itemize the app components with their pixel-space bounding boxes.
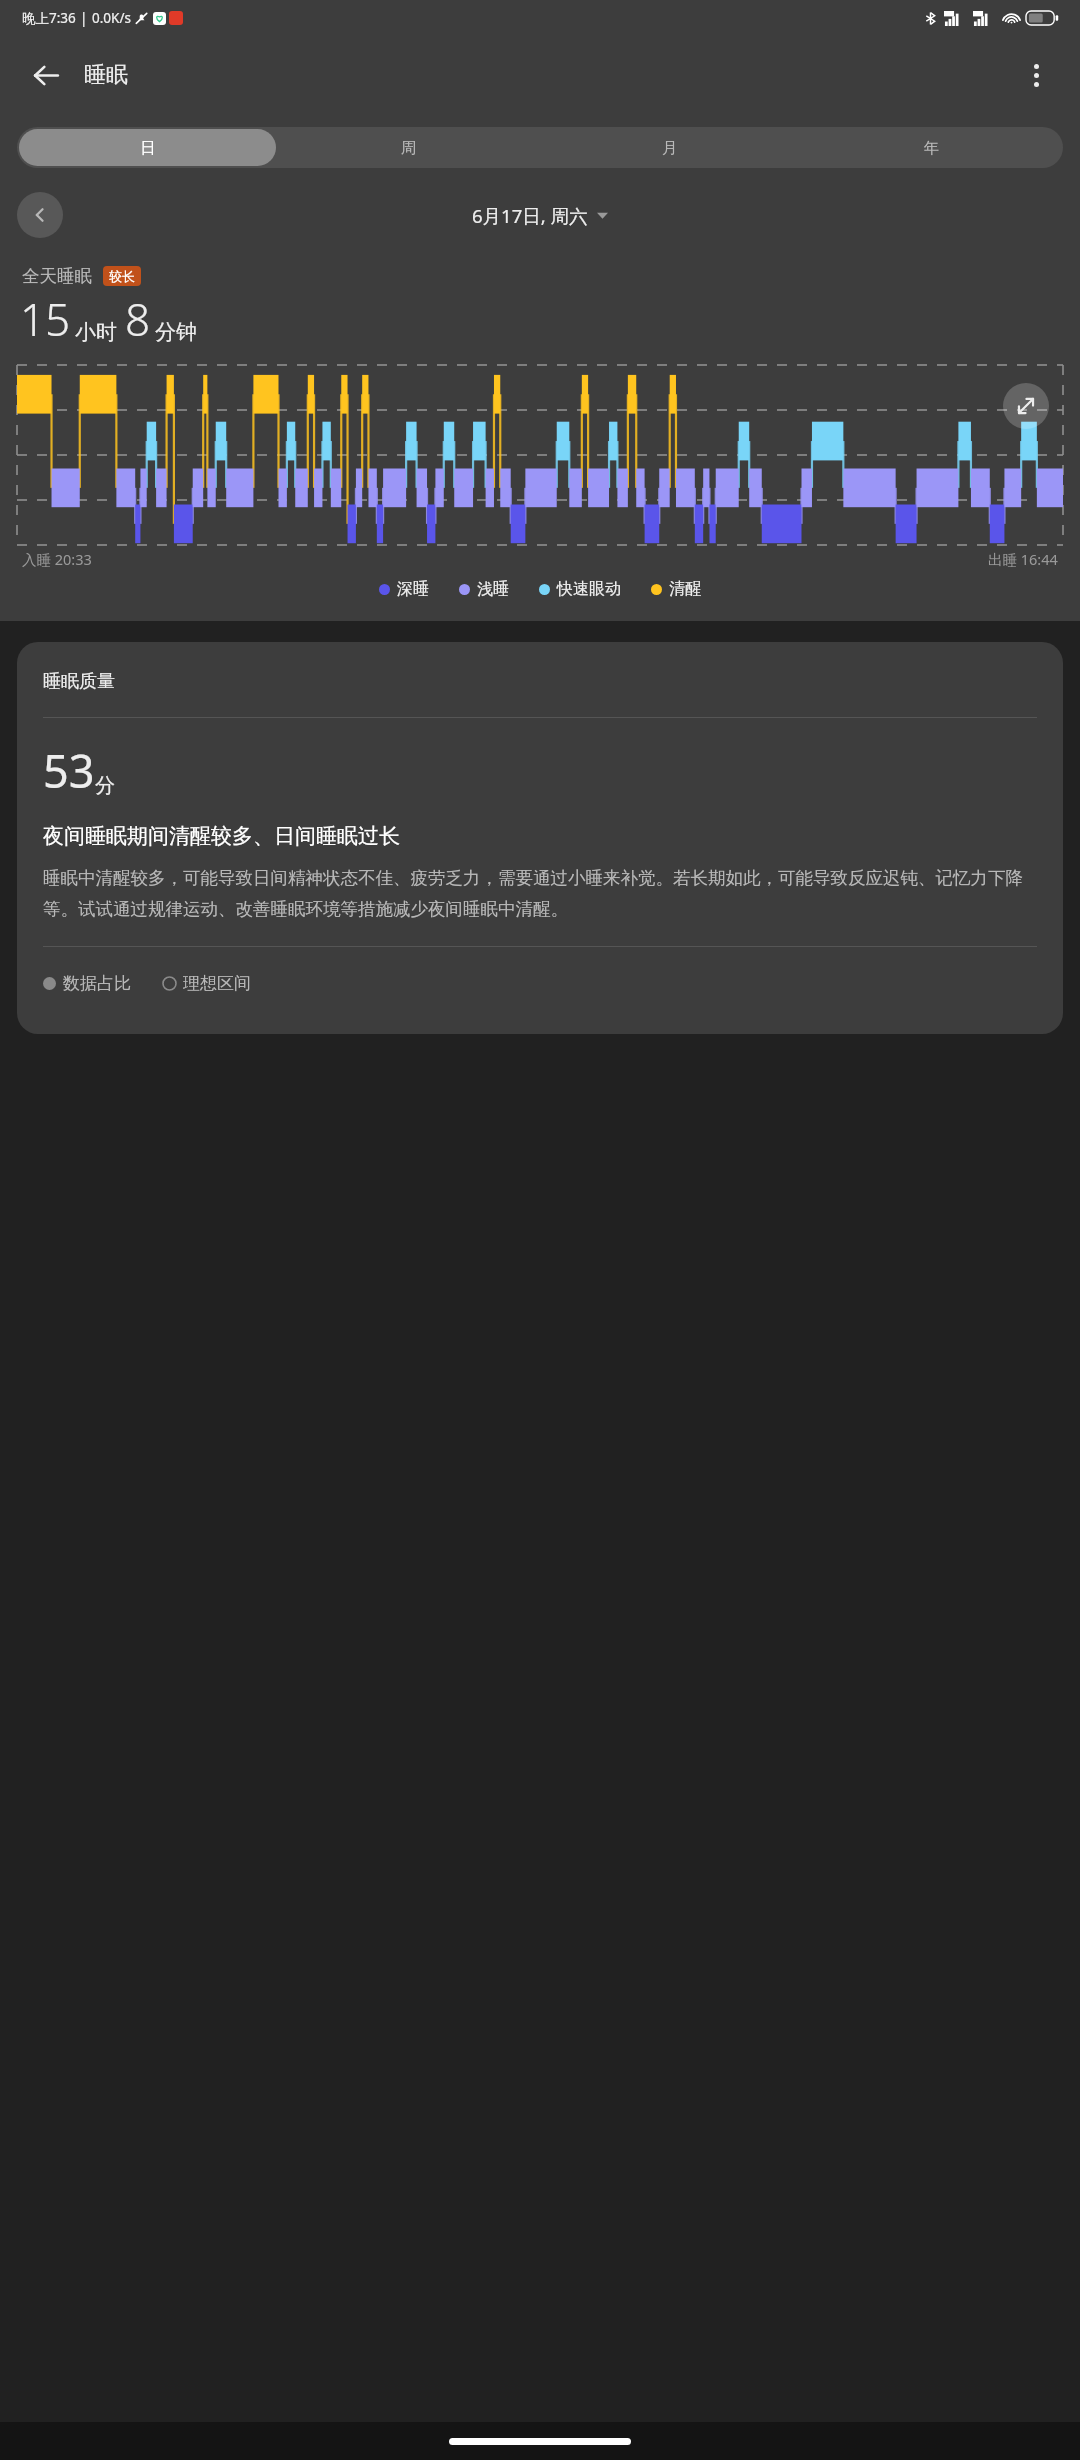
- staticText: 全天睡眠: [22, 265, 92, 287]
- button[interactable]: More options: [1012, 51, 1060, 99]
- staticText: 8: [125, 289, 151, 349]
- staticText: 周: [401, 138, 417, 158]
- staticText: 睡眠中清醒较多，可能导致日间精神状态不佳、疲劳乏力，需要通过小睡来补觉。若长期如…: [43, 867, 1037, 920]
- button[interactable]: 日: [19, 129, 276, 166]
- staticText: 入睡 20:33: [22, 549, 92, 569]
- staticText: 年: [924, 138, 940, 158]
- staticText: 日: [140, 138, 156, 158]
- button[interactable]: 6月17日, 周六: [464, 199, 616, 232]
- button[interactable]: Previous day: [17, 192, 63, 238]
- staticText: 理想区间: [183, 973, 251, 994]
- button[interactable]: 周: [280, 129, 537, 166]
- staticText: 出睡 16:44: [988, 549, 1058, 569]
- button[interactable]: 年: [803, 129, 1061, 166]
- staticText: 53: [43, 740, 95, 801]
- button[interactable]: Expand chart: [1003, 383, 1049, 429]
- button[interactable]: 月: [541, 129, 799, 166]
- staticText: 小时: [75, 319, 117, 345]
- button[interactable]: 理想区间: [163, 973, 251, 994]
- staticText: 快速眼动: [557, 579, 621, 599]
- staticText: 清醒: [669, 579, 701, 599]
- staticText: 6月17日, 周六: [472, 203, 588, 228]
- staticText: 分钟: [155, 319, 197, 345]
- staticText: 深睡: [397, 579, 429, 599]
- button[interactable]: 数据占比: [43, 973, 131, 994]
- staticText: 较长: [109, 268, 135, 284]
- staticText: 浅睡: [477, 579, 509, 599]
- staticText: 睡眠质量: [43, 670, 115, 693]
- staticText: 睡眠: [84, 61, 128, 89]
- staticText: 0.0K/s: [92, 9, 131, 27]
- staticText: 15: [20, 289, 71, 349]
- staticText: 晚上7:36: [22, 9, 76, 27]
- staticText: |: [80, 9, 88, 27]
- staticText: 夜间睡眠期间清醒较多、日间睡眠过长: [43, 823, 400, 849]
- button[interactable]: 睡眠质量: [17, 642, 1063, 1034]
- staticText: 数据占比: [63, 973, 131, 994]
- staticText: 分: [95, 773, 115, 798]
- button[interactable]: Back: [20, 49, 72, 101]
- staticText: 月: [662, 138, 678, 158]
